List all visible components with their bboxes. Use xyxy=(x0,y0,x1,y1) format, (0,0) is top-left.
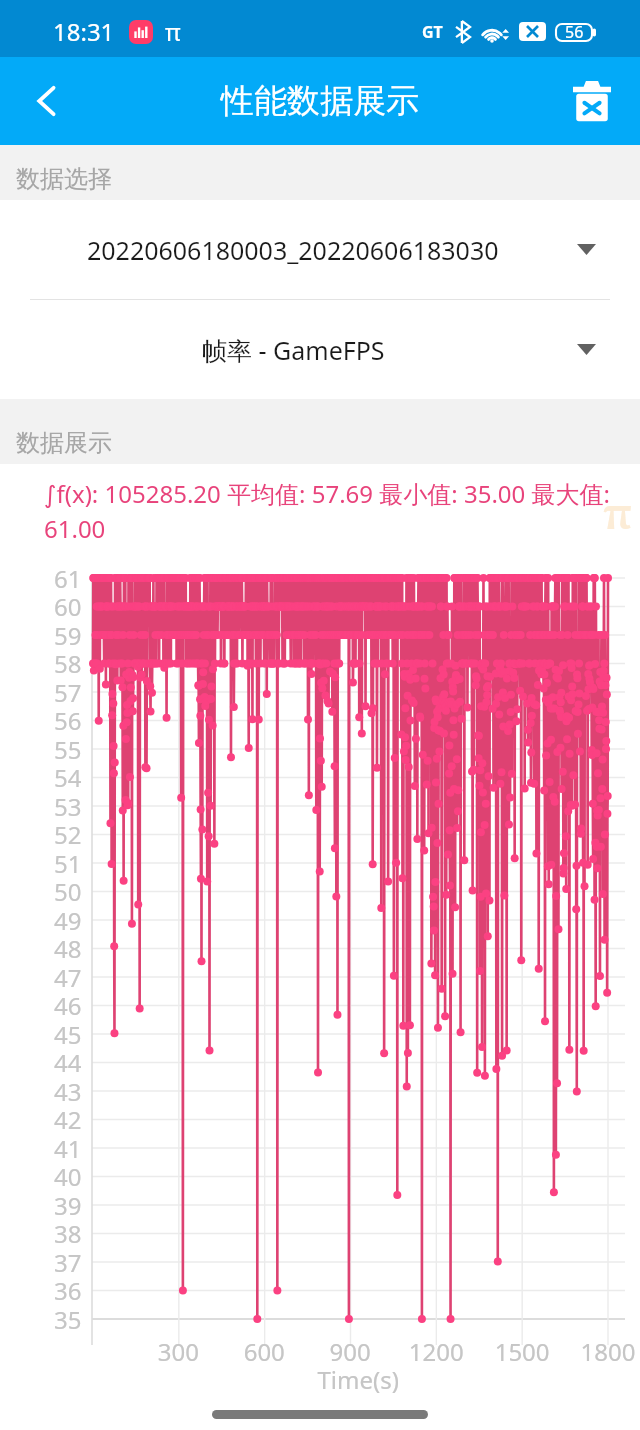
staticText: 性能数据展示 xyxy=(221,80,419,122)
staticText: GT xyxy=(422,21,443,43)
button[interactable]: 20220606180003_20220606183030 xyxy=(0,200,640,299)
button[interactable]: Back xyxy=(16,70,78,132)
staticText: 帧率 - GameFPS xyxy=(202,333,385,367)
staticText: 18:31 xyxy=(53,15,115,48)
staticText: 56 xyxy=(565,21,584,43)
staticText: 数据选择 xyxy=(16,164,112,194)
button[interactable]: Delete xyxy=(562,71,622,131)
staticText: 20220606180003_20220606183030 xyxy=(87,233,499,267)
staticText: π xyxy=(165,15,181,48)
button[interactable]: 帧率 - GameFPS xyxy=(0,300,640,399)
staticText: ∫f(x): 105285.20 平均值: 57.69 最小值: 35.00 最… xyxy=(44,477,632,545)
staticText: π xyxy=(603,482,633,542)
staticText: 数据展示 xyxy=(16,428,112,458)
